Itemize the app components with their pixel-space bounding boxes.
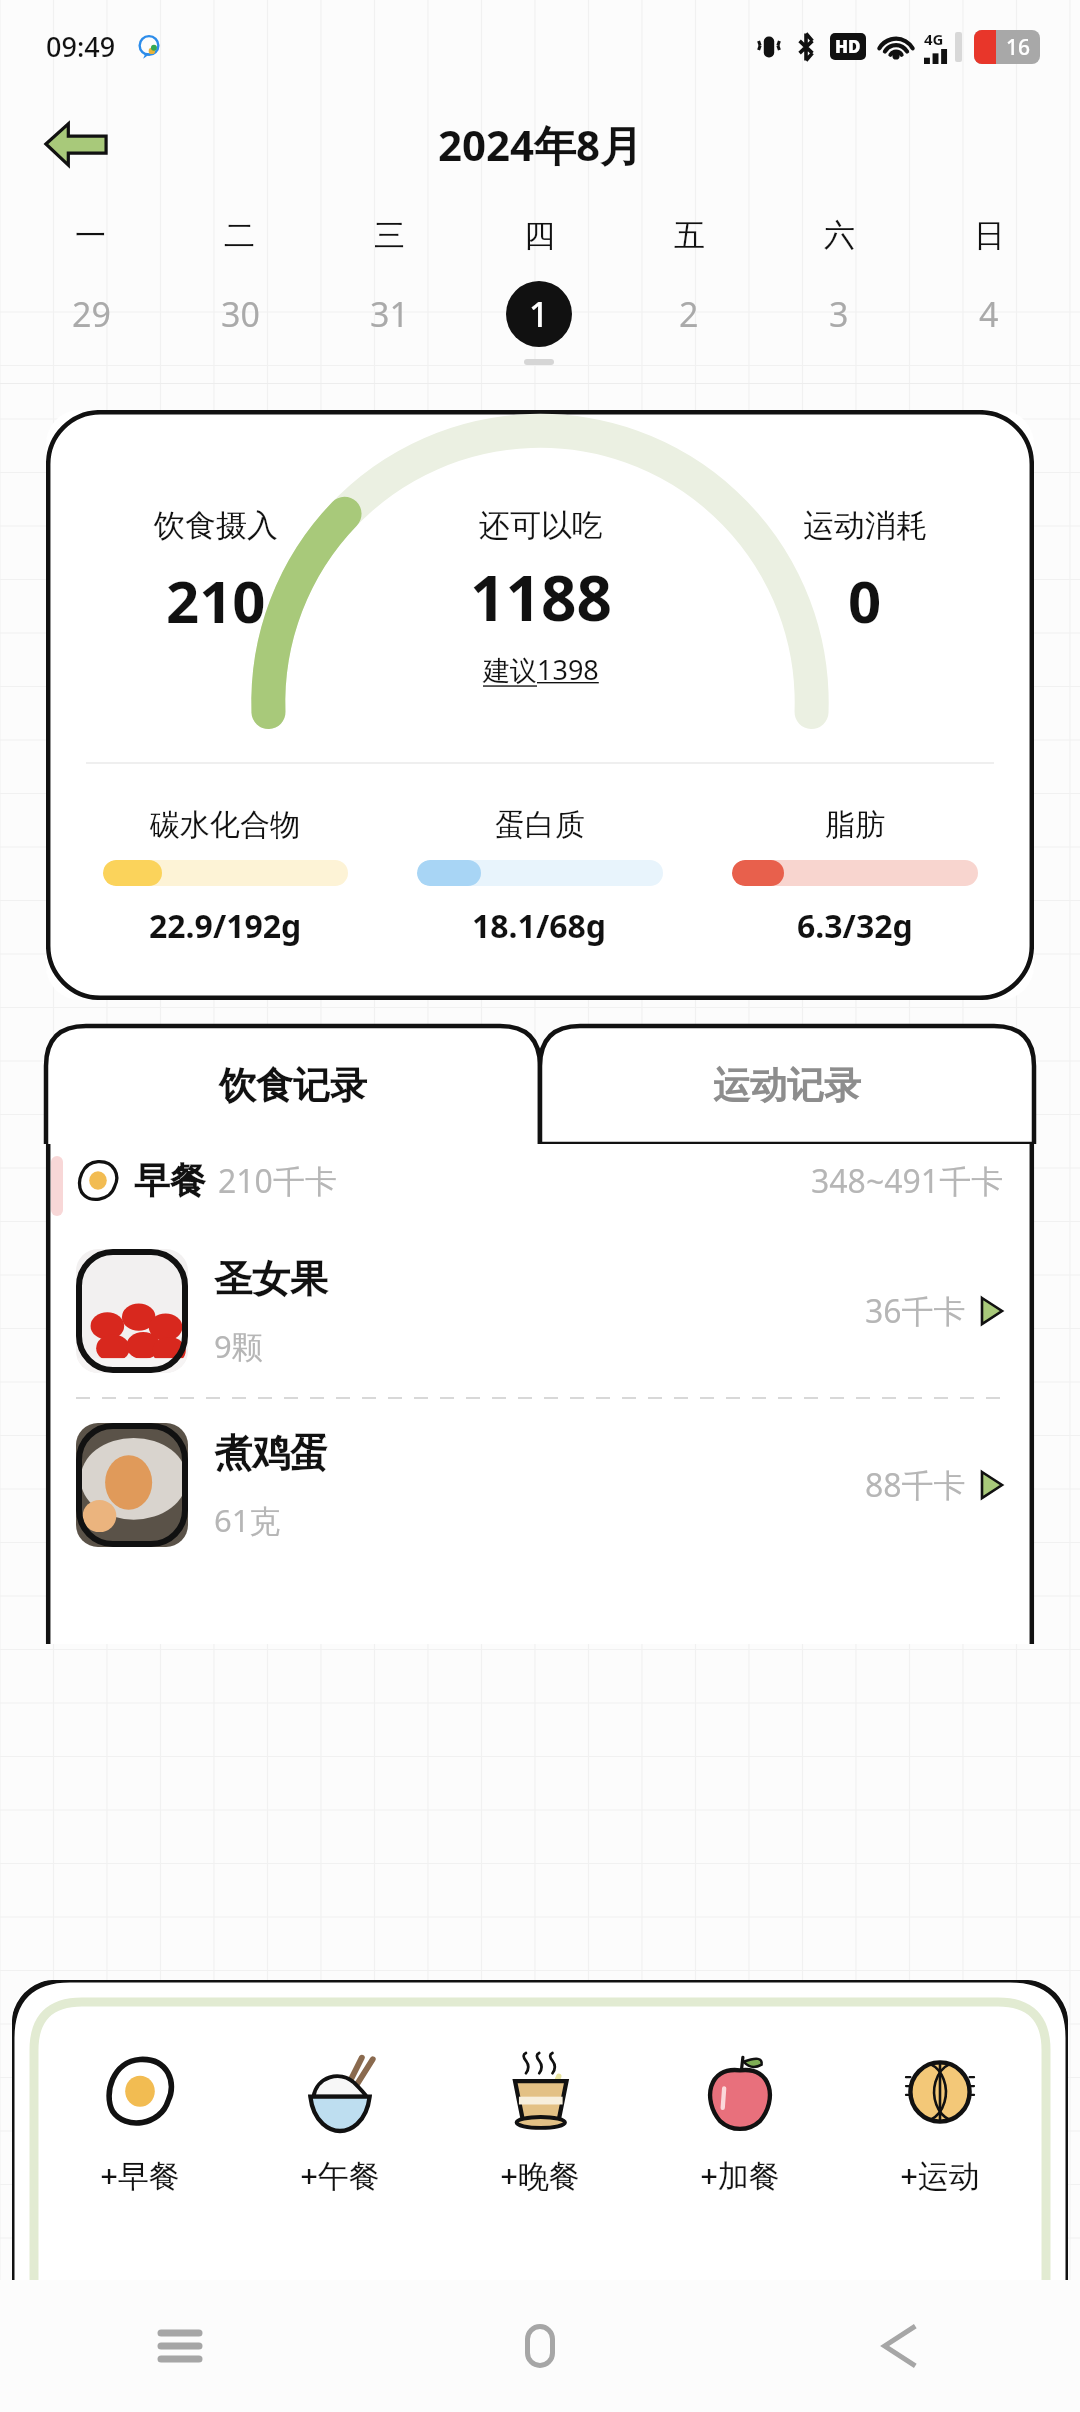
staticText: 31	[370, 291, 409, 337]
button[interactable]: 31	[314, 281, 464, 347]
button[interactable]: 早餐	[76, 1158, 1004, 1203]
staticText: +早餐	[100, 2154, 180, 2196]
button[interactable]: +加餐	[650, 2052, 830, 2196]
staticText: +晚餐	[500, 2154, 580, 2196]
staticText: 210千卡	[218, 1159, 337, 1203]
staticText: 18.1/68g	[472, 904, 607, 948]
staticText: 运动消耗	[803, 506, 927, 545]
staticText: 一	[75, 216, 106, 255]
staticText: 煮鸡蛋	[214, 1429, 328, 1477]
button[interactable]: 29	[16, 281, 165, 347]
staticText: HD	[835, 35, 861, 58]
staticText: 3	[829, 291, 849, 337]
staticText: 蛋白质	[495, 806, 585, 844]
staticText: 2	[679, 291, 699, 337]
staticText: 29	[72, 291, 111, 337]
staticText: 六	[824, 216, 855, 255]
button[interactable]: 饮食摄入	[46, 410, 1034, 1000]
button[interactable]: 2	[614, 281, 764, 347]
staticText: +运动	[900, 2154, 980, 2196]
staticText: 09:49	[46, 28, 116, 65]
staticText: 建议1398	[483, 651, 599, 688]
staticText: 三	[374, 216, 405, 255]
button[interactable]: 3	[764, 281, 914, 347]
staticText: 脂肪	[825, 806, 885, 844]
staticText: 6.3/32g	[797, 904, 913, 948]
staticText: +加餐	[700, 2154, 780, 2196]
staticText: 36千卡	[865, 1289, 966, 1333]
staticText: +午餐	[300, 2154, 380, 2196]
staticText: 四	[524, 216, 555, 255]
staticText: 4	[979, 291, 999, 337]
staticText: 还可以吃	[479, 506, 603, 545]
staticText: 1188	[470, 555, 612, 639]
staticText: 4G	[924, 29, 944, 49]
button[interactable]: 煮鸡蛋	[76, 1399, 1004, 1571]
button[interactable]: +早餐	[50, 2052, 230, 2196]
button[interactable]: +运动	[850, 2052, 1030, 2196]
staticText: 二	[224, 216, 255, 255]
staticText: 9颗	[214, 1325, 263, 1367]
staticText: 早餐	[134, 1158, 206, 1203]
staticText: 16	[1006, 33, 1031, 62]
staticText: 五	[674, 216, 705, 255]
button[interactable]: 运动记录	[540, 1026, 1034, 1144]
staticText: 2024年8月	[438, 116, 643, 173]
button[interactable]: Recents	[0, 2280, 360, 2412]
staticText: 运动记录	[713, 1062, 861, 1109]
button[interactable]: Back	[720, 2280, 1080, 2412]
button[interactable]: 4	[914, 281, 1064, 347]
staticText: 61克	[214, 1499, 281, 1541]
staticText: 圣女果	[214, 1255, 328, 1303]
button[interactable]: 饮食记录	[46, 1026, 540, 1144]
button[interactable]: 1	[464, 281, 614, 347]
staticText: 30	[221, 291, 260, 337]
button[interactable]: Home	[360, 2280, 720, 2412]
staticText: 0	[848, 561, 882, 640]
button[interactable]: 30	[165, 281, 314, 347]
button[interactable]: +晚餐	[450, 2052, 630, 2196]
staticText: 碳水化合物	[150, 806, 300, 844]
staticText: 饮食摄入	[154, 506, 278, 545]
staticText: 日	[974, 216, 1005, 255]
staticText: 22.9/192g	[149, 904, 302, 948]
button[interactable]: Back	[38, 106, 114, 182]
staticText: 88千卡	[865, 1463, 966, 1507]
staticText: 1	[529, 291, 549, 337]
button[interactable]: 圣女果	[76, 1225, 1004, 1397]
staticText: 饮食记录	[219, 1062, 367, 1109]
button[interactable]: +午餐	[250, 2052, 430, 2196]
staticText: 348~491千卡	[811, 1159, 1004, 1203]
staticText: 210	[166, 561, 266, 640]
